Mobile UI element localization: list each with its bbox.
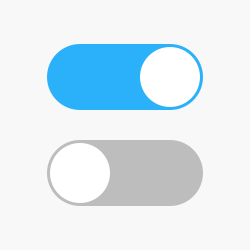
button[interactable]: Switch on xyxy=(47,44,203,110)
button[interactable]: Switch off xyxy=(47,140,203,206)
